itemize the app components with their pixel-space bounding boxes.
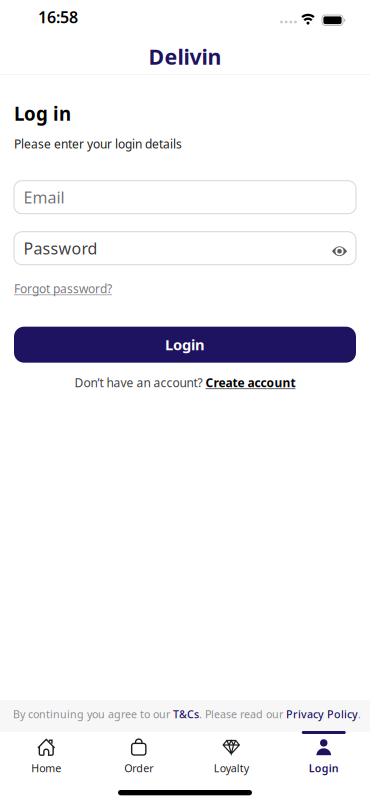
button[interactable]: Login xyxy=(14,327,356,363)
staticText: . Please read our xyxy=(199,707,286,721)
staticText: . xyxy=(358,707,361,721)
staticText: Forgot password? xyxy=(14,281,112,297)
staticText: Please enter your login details xyxy=(14,136,182,152)
button[interactable]: Order xyxy=(92,737,185,775)
button[interactable]: Show password xyxy=(331,243,347,254)
staticText: By continuing you agree to our xyxy=(13,707,173,721)
button[interactable]: Create account xyxy=(205,375,295,391)
staticText: T&Cs xyxy=(173,707,199,721)
staticText: 16:58 xyxy=(38,6,78,28)
button[interactable]: Login xyxy=(277,737,370,775)
button[interactable]: Forgot password? xyxy=(14,281,112,297)
staticText: Don’t have an account? xyxy=(74,375,205,391)
staticText: Log in xyxy=(14,101,71,126)
staticText: Password xyxy=(23,238,97,259)
button[interactable]: Home xyxy=(0,737,92,775)
button[interactable]: Loyalty xyxy=(185,737,277,775)
staticText: Privacy Policy xyxy=(286,707,358,721)
staticText: Login xyxy=(165,335,205,354)
staticText: Loyalty xyxy=(214,761,249,775)
staticText: Login xyxy=(309,761,339,775)
staticText: Create account xyxy=(205,375,295,391)
button[interactable]: T&Cs xyxy=(173,707,199,721)
button[interactable]: Privacy Policy xyxy=(286,707,358,721)
staticText: Home xyxy=(31,761,61,775)
staticText: Order xyxy=(124,761,153,775)
staticText: Email xyxy=(23,187,64,208)
staticText: Delivin xyxy=(148,42,221,71)
